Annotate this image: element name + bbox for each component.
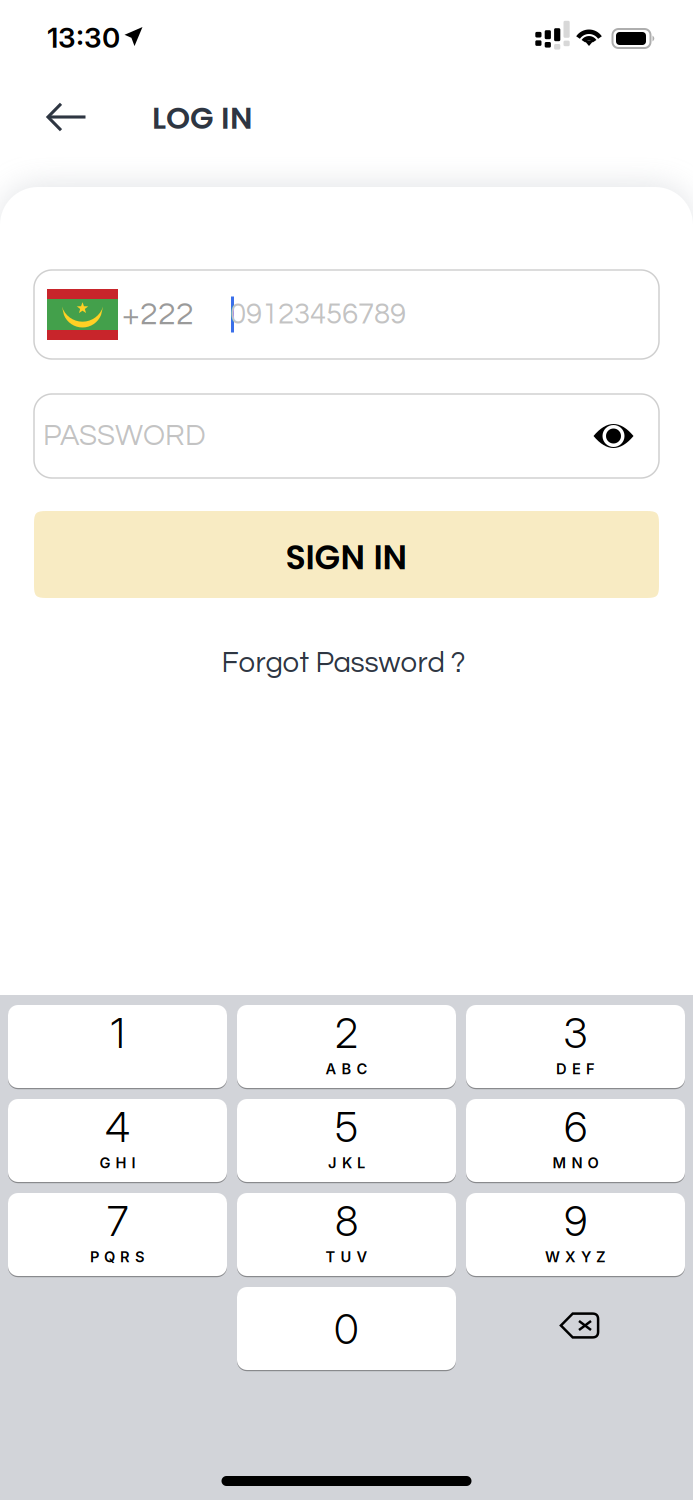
staticText: MNO: [552, 1154, 598, 1172]
staticText: Forgot Password ?: [221, 648, 465, 678]
staticText: DEF: [556, 1060, 595, 1078]
button[interactable]: 0: [237, 1287, 456, 1370]
button[interactable]: Delete: [466, 1287, 685, 1370]
staticText: +222: [122, 298, 194, 331]
staticText: 7: [107, 1196, 128, 1246]
button[interactable]: SIGN IN: [34, 511, 659, 598]
staticText: 2: [335, 1008, 358, 1058]
staticText: GHI: [99, 1154, 135, 1172]
button[interactable]: 6: [466, 1099, 685, 1182]
button[interactable]: 8: [237, 1193, 456, 1276]
staticText: 0: [334, 1304, 359, 1354]
button[interactable]: 3: [466, 1005, 685, 1088]
staticText: JKL: [328, 1154, 365, 1172]
button[interactable]: 5: [237, 1099, 456, 1182]
button[interactable]: 2: [237, 1005, 456, 1088]
button[interactable]: 4: [8, 1099, 227, 1182]
staticText: 6: [564, 1102, 587, 1152]
staticText: PASSWORD: [43, 421, 206, 451]
staticText: TUV: [325, 1248, 367, 1266]
button[interactable]: 9: [466, 1193, 685, 1276]
staticText: 9: [564, 1196, 587, 1246]
button[interactable]: Show password: [569, 394, 659, 478]
button[interactable]: 1: [8, 1005, 227, 1088]
button[interactable]: Back: [0, 81, 152, 149]
staticText: ABC: [325, 1060, 367, 1078]
staticText: SIGN IN: [285, 534, 407, 581]
button[interactable]: Forgot Password ?: [224, 598, 468, 691]
staticText: 3: [563, 1008, 587, 1058]
staticText: 5: [335, 1102, 358, 1152]
staticText: WXYZ: [545, 1248, 606, 1266]
staticText: 09123456789: [230, 299, 406, 330]
staticText: LOG IN: [152, 96, 253, 139]
staticText: 1: [110, 1008, 124, 1058]
staticText: 8: [335, 1196, 358, 1246]
staticText: PQRS: [90, 1248, 145, 1266]
staticText: 13:30: [47, 21, 120, 54]
staticText: 4: [105, 1102, 130, 1152]
button[interactable]: 7: [8, 1193, 227, 1276]
